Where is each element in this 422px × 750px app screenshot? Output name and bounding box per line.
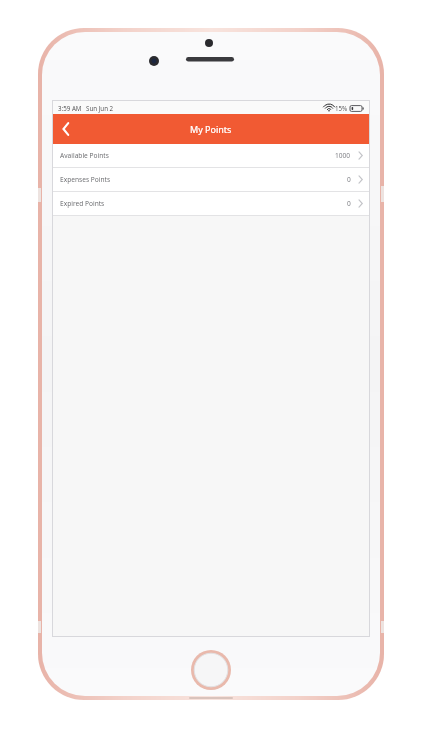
staticText: 1000 [335, 151, 351, 160]
other: Home [191, 650, 231, 690]
staticText: Expired Points [60, 199, 105, 208]
staticText: Sun Jun 2 [86, 104, 114, 112]
staticText: 0 [347, 199, 351, 208]
button[interactable]: Back [53, 114, 79, 144]
button[interactable]: Available Points [53, 144, 369, 167]
button[interactable]: Expenses Points [53, 168, 369, 191]
staticText: Available Points [60, 151, 109, 160]
staticText: 3:59 AM [58, 104, 82, 112]
staticText: Expenses Points [60, 175, 111, 184]
button[interactable]: Expired Points [53, 192, 369, 215]
staticText: 0 [347, 175, 351, 184]
staticText: My Points [190, 123, 232, 135]
staticText: 15% [335, 104, 348, 112]
